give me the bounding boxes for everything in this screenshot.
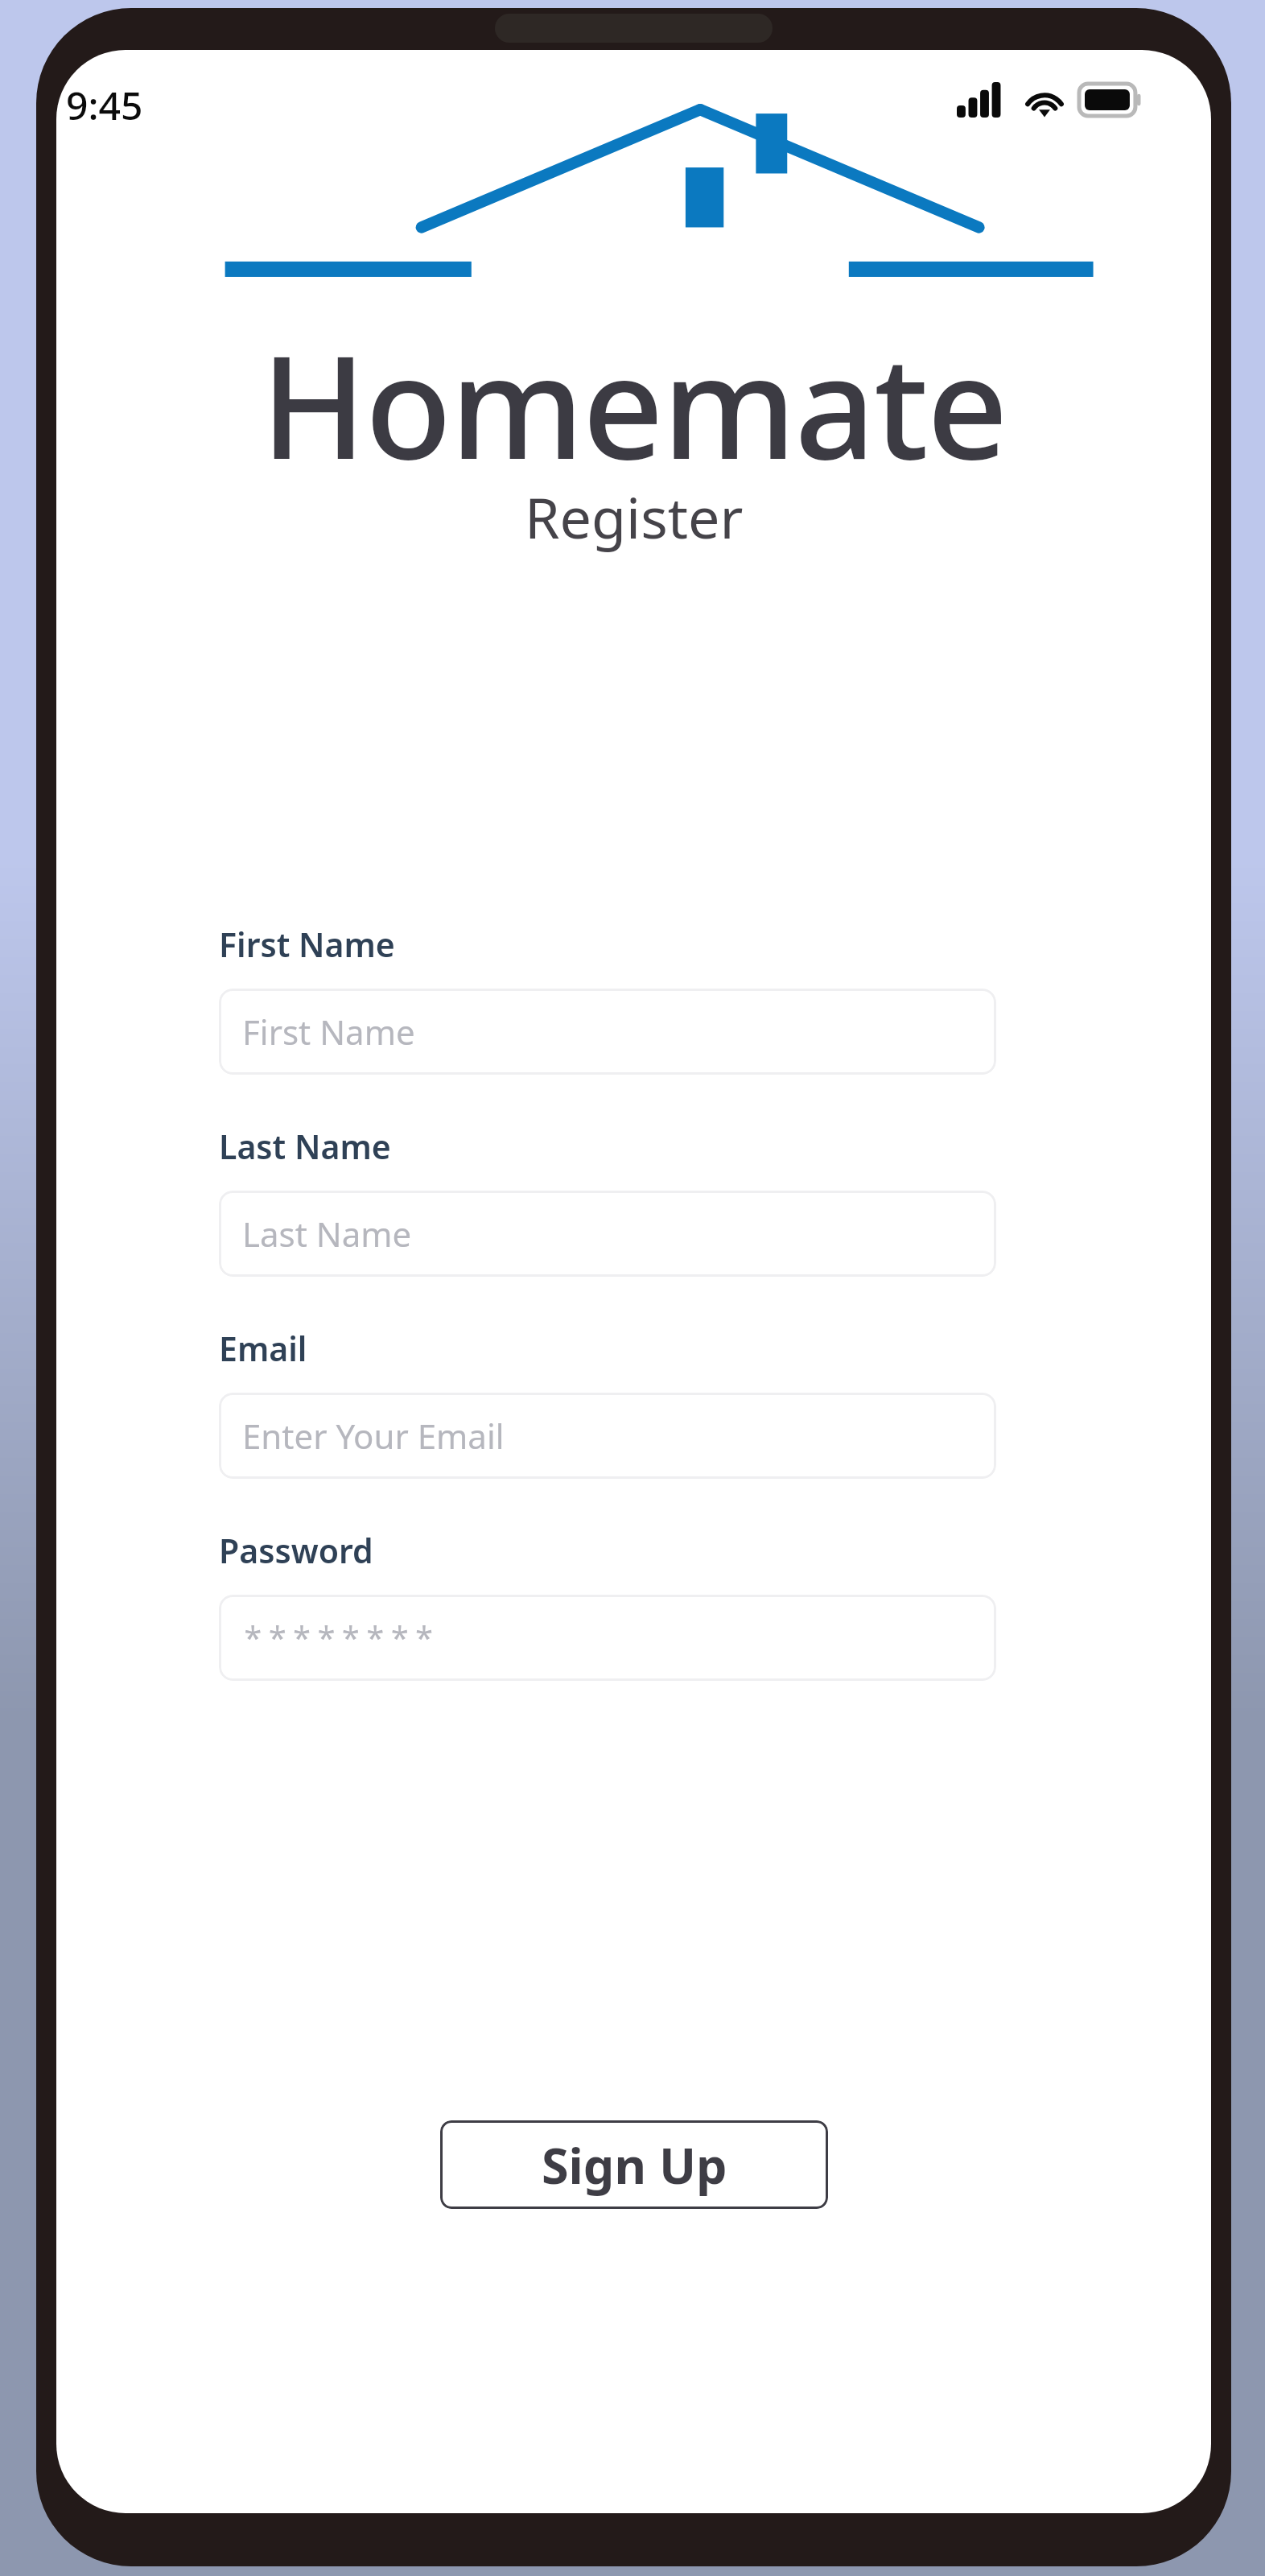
button[interactable]: Sign Up bbox=[440, 2120, 828, 2209]
staticText: Last Name bbox=[242, 1211, 412, 1257]
button[interactable]: ******** bbox=[219, 1595, 996, 1681]
staticText: Enter Your Email bbox=[242, 1413, 505, 1459]
staticText: Password bbox=[219, 1528, 373, 1573]
staticText: First Name bbox=[242, 1009, 415, 1055]
staticText: First Name bbox=[219, 922, 395, 967]
button[interactable]: Last Name bbox=[219, 1191, 996, 1277]
staticText: Sign Up bbox=[542, 2132, 727, 2198]
staticText: ******** bbox=[242, 1614, 439, 1662]
staticText: 9:45 bbox=[66, 79, 143, 131]
staticText: Email bbox=[219, 1326, 307, 1371]
staticText: Homemate bbox=[261, 308, 1007, 501]
staticText: Last Name bbox=[219, 1124, 391, 1169]
button[interactable]: First Name bbox=[219, 989, 996, 1075]
staticText: Register bbox=[525, 478, 744, 555]
button[interactable]: Enter Your Email bbox=[219, 1393, 996, 1479]
